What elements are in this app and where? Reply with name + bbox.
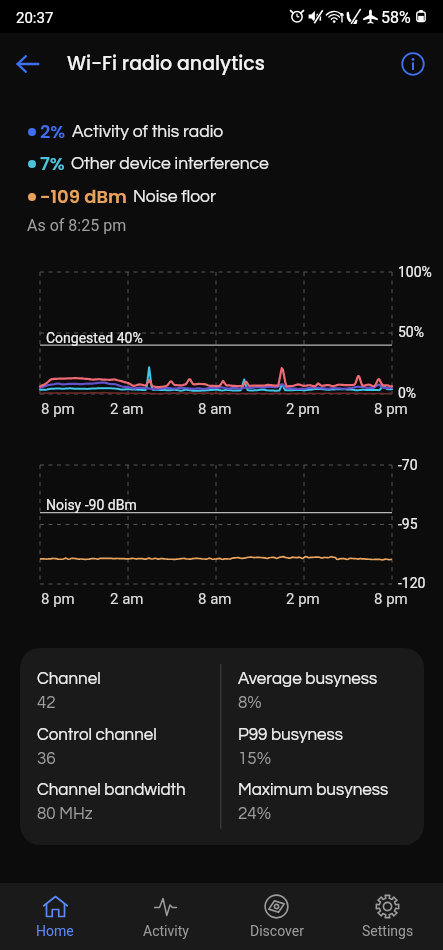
- staticText: 8 pm: [374, 400, 408, 418]
- button[interactable]: Discover: [221, 883, 332, 950]
- staticText: 80 MHz: [37, 805, 93, 823]
- staticText: Congested 40%: [46, 330, 143, 346]
- staticText: 58%: [381, 8, 411, 27]
- staticText: -95: [398, 516, 418, 532]
- staticText: -109 dBm: [40, 184, 127, 209]
- staticText: Discover: [250, 923, 304, 939]
- staticText: Activity of this radio: [72, 123, 224, 141]
- staticText: Maximum busyness: [238, 781, 389, 799]
- staticText: 2 pm: [286, 400, 320, 418]
- staticText: 2 am: [110, 590, 144, 608]
- staticText: As of 8:25 pm: [27, 216, 127, 235]
- button[interactable]: Activity: [110, 883, 221, 950]
- staticText: 100%: [398, 264, 432, 280]
- staticText: -120: [398, 575, 426, 591]
- button[interactable]: Settings: [332, 883, 443, 950]
- staticText: Activity: [143, 923, 189, 939]
- staticText: 2 pm: [286, 590, 320, 608]
- staticText: 0%: [398, 385, 417, 401]
- staticText: 8 am: [198, 590, 232, 608]
- staticText: -70: [398, 457, 418, 473]
- staticText: 42: [37, 694, 56, 712]
- staticText: 2%: [40, 119, 66, 144]
- staticText: 20:37: [16, 9, 54, 27]
- staticText: 8 pm: [41, 590, 75, 608]
- staticText: 8 pm: [41, 400, 75, 418]
- staticText: Noisy -90 dBm: [46, 497, 137, 513]
- staticText: Wi-Fi radio analytics: [67, 50, 265, 77]
- staticText: 36: [37, 750, 56, 768]
- staticText: Other device interference: [71, 155, 269, 173]
- staticText: 8 pm: [374, 590, 408, 608]
- staticText: 50%: [398, 324, 424, 340]
- staticText: Control channel: [37, 726, 157, 744]
- staticText: P99 busyness: [238, 726, 343, 744]
- staticText: Average busyness: [238, 670, 378, 688]
- staticText: 24%: [238, 805, 272, 823]
- button[interactable]: Channel: [20, 648, 424, 845]
- staticText: Home: [36, 923, 74, 939]
- staticText: 7%: [40, 151, 65, 176]
- button[interactable]: Back: [6, 42, 50, 86]
- staticText: Channel bandwidth: [37, 781, 186, 799]
- staticText: 2 am: [110, 400, 144, 418]
- button[interactable]: Home: [0, 883, 110, 950]
- staticText: Channel: [37, 670, 101, 688]
- staticText: 8 am: [198, 400, 232, 418]
- staticText: Noise floor: [133, 188, 216, 206]
- staticText: Settings: [362, 923, 414, 939]
- staticText: 8%: [238, 694, 262, 712]
- staticText: 15%: [238, 750, 272, 768]
- button[interactable]: Info: [391, 42, 435, 86]
